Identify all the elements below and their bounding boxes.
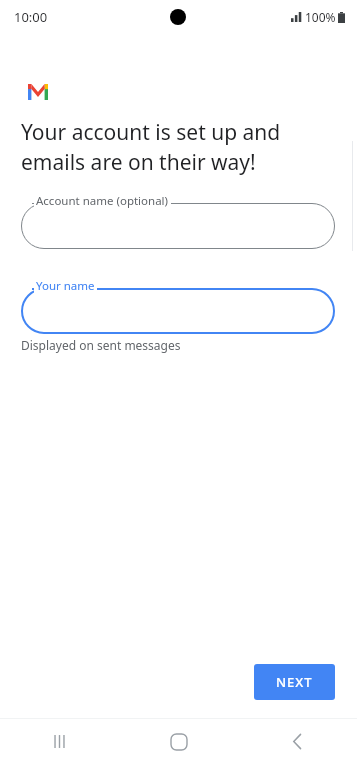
button[interactable]: Account name (optional) [21, 193, 335, 249]
staticText: Your account is set up and emails are on… [21, 118, 281, 176]
staticText: 100% [305, 9, 336, 25]
button[interactable]: Your name [21, 278, 335, 334]
button[interactable]: Home [119, 718, 238, 765]
staticText: Displayed on sent messages [21, 337, 181, 353]
staticText: 10:00 [14, 8, 48, 26]
staticText: Your name [36, 278, 95, 294]
staticText: Account name (optional) [36, 193, 169, 209]
button[interactable]: Back [238, 718, 357, 765]
staticText: NEXT [276, 673, 313, 691]
button[interactable]: Recents [0, 718, 119, 765]
button[interactable]: NEXT [254, 664, 335, 700]
